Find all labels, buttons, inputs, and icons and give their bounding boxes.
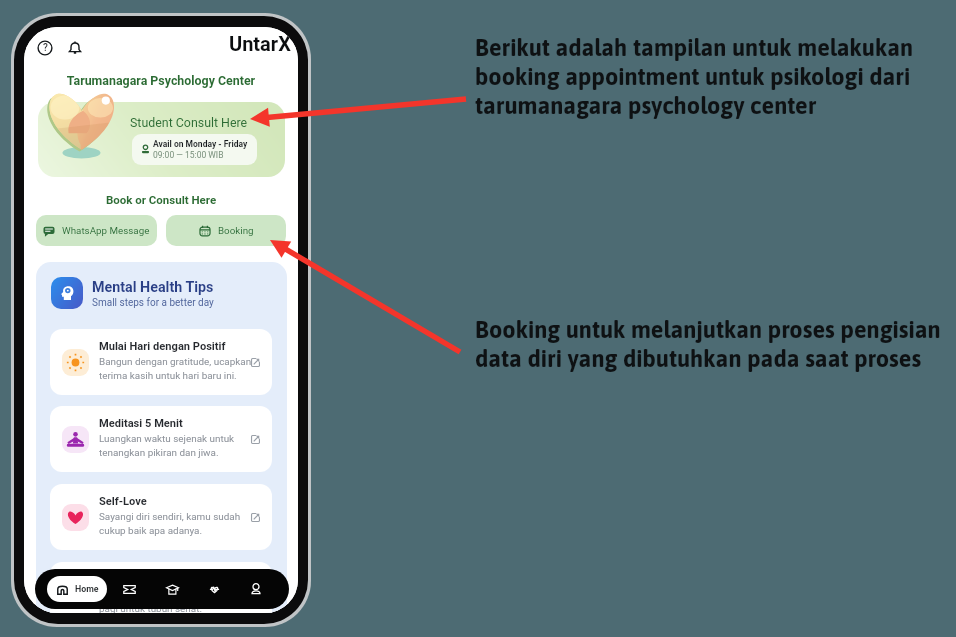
staticText: WhatsApp Message	[62, 225, 150, 236]
staticText: 09:00 — 15:00 WIB	[153, 150, 224, 160]
button[interactable]: Profile	[242, 575, 270, 603]
button[interactable]: Home	[47, 576, 107, 602]
staticText: Bangun dengan gratitude, ucapkan terima …	[99, 356, 252, 381]
staticText: Booking untuk melanjutkan proses pengisi…	[475, 316, 955, 372]
staticText: Booking	[218, 225, 254, 236]
staticText: Avail on Monday - Friday	[153, 139, 248, 149]
button[interactable]: Booking	[166, 215, 286, 246]
staticText: Tarumanagara Psychology Center	[24, 73, 298, 88]
staticText: Nikmati kehangatan sinar matahari pagi u…	[99, 589, 253, 613]
staticText: Self-Love	[99, 495, 147, 508]
staticText: Berikut adalah tampilan untuk melakukan …	[475, 34, 925, 119]
staticText: Small steps for a better day	[92, 297, 214, 309]
button[interactable]: Student Consult Here	[38, 102, 285, 177]
staticText: Berjemur Pagi	[99, 573, 170, 586]
staticText: Home	[75, 584, 99, 594]
button[interactable]: Help	[35, 38, 55, 58]
staticText: Mulai Hari dengan Positif	[99, 340, 226, 353]
button[interactable]: Mulai Hari dengan Positif	[50, 329, 272, 395]
button[interactable]: Favourites	[200, 575, 228, 603]
button[interactable]: Berjemur Pagi	[50, 562, 272, 613]
staticText: Meditasi 5 Menit	[99, 417, 183, 430]
button[interactable]: WhatsApp Message	[36, 215, 157, 246]
staticText: Student Consult Here	[130, 115, 248, 130]
button[interactable]: UntarX	[229, 32, 291, 55]
staticText: UntarX	[229, 32, 291, 55]
button[interactable]: Self-Love	[50, 484, 272, 550]
staticText: Sayangi diri sendiri, kamu sudah cukup b…	[99, 511, 241, 536]
button[interactable]: Courses	[158, 575, 186, 603]
button[interactable]: Notifications	[65, 38, 85, 58]
button[interactable]: Meditasi 5 Menit	[50, 406, 272, 472]
button[interactable]: Tickets	[115, 575, 143, 603]
staticText: Luangkan waktu sejenak untuk tenangkan p…	[99, 433, 235, 458]
staticText: Mental Health Tips	[92, 279, 214, 296]
staticText: Book or Consult Here	[24, 193, 298, 206]
staticText: ?	[43, 42, 48, 54]
